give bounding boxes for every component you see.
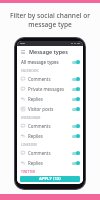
staticText: Replies — [28, 96, 43, 102]
button[interactable]: Toggle enabled — [72, 87, 80, 91]
staticText: Private messages — [28, 86, 65, 92]
staticText: Comments — [28, 123, 51, 129]
staticText: Replies — [28, 160, 43, 166]
button[interactable]: Open navigation menu — [20, 49, 26, 55]
staticText: APPLY (12) — [39, 176, 61, 182]
button[interactable]: Replies — [17, 94, 83, 104]
staticText: All message types — [21, 59, 59, 65]
staticText: Filter by social channel or message type — [8, 11, 92, 29]
button[interactable]: Toggle enabled — [72, 60, 80, 64]
button[interactable]: Comments — [17, 148, 83, 158]
button[interactable]: APPLY (12) — [20, 176, 80, 182]
button[interactable]: Replies — [17, 158, 83, 168]
button[interactable]: Toggle enabled — [72, 134, 80, 138]
button[interactable]: Comments — [17, 121, 83, 131]
button[interactable]: Toggle enabled — [72, 97, 80, 101]
button[interactable]: Toggle enabled — [72, 151, 80, 155]
button[interactable]: Toggle enabled — [72, 107, 80, 111]
staticText: Message types — [29, 48, 68, 55]
staticText: Visitor posts — [28, 106, 54, 112]
staticText: INSTAGRAM — [21, 115, 41, 120]
staticText: TWITTER — [21, 169, 36, 174]
staticText: LINKEDIN — [21, 142, 37, 147]
button[interactable]: All message types — [17, 57, 83, 67]
button[interactable]: Replies — [17, 131, 83, 141]
button[interactable]: Visitor posts — [17, 104, 83, 114]
staticText: Comments — [28, 76, 51, 82]
button[interactable]: Private messages — [17, 84, 83, 94]
staticText: Comments — [28, 150, 51, 156]
button[interactable]: Comments — [17, 74, 83, 84]
button[interactable]: Toggle enabled — [72, 77, 80, 81]
staticText: FACEBOOK — [21, 68, 39, 73]
button[interactable]: Toggle enabled — [72, 161, 80, 165]
staticText: Replies — [28, 133, 43, 139]
button[interactable]: Toggle enabled — [72, 124, 80, 128]
